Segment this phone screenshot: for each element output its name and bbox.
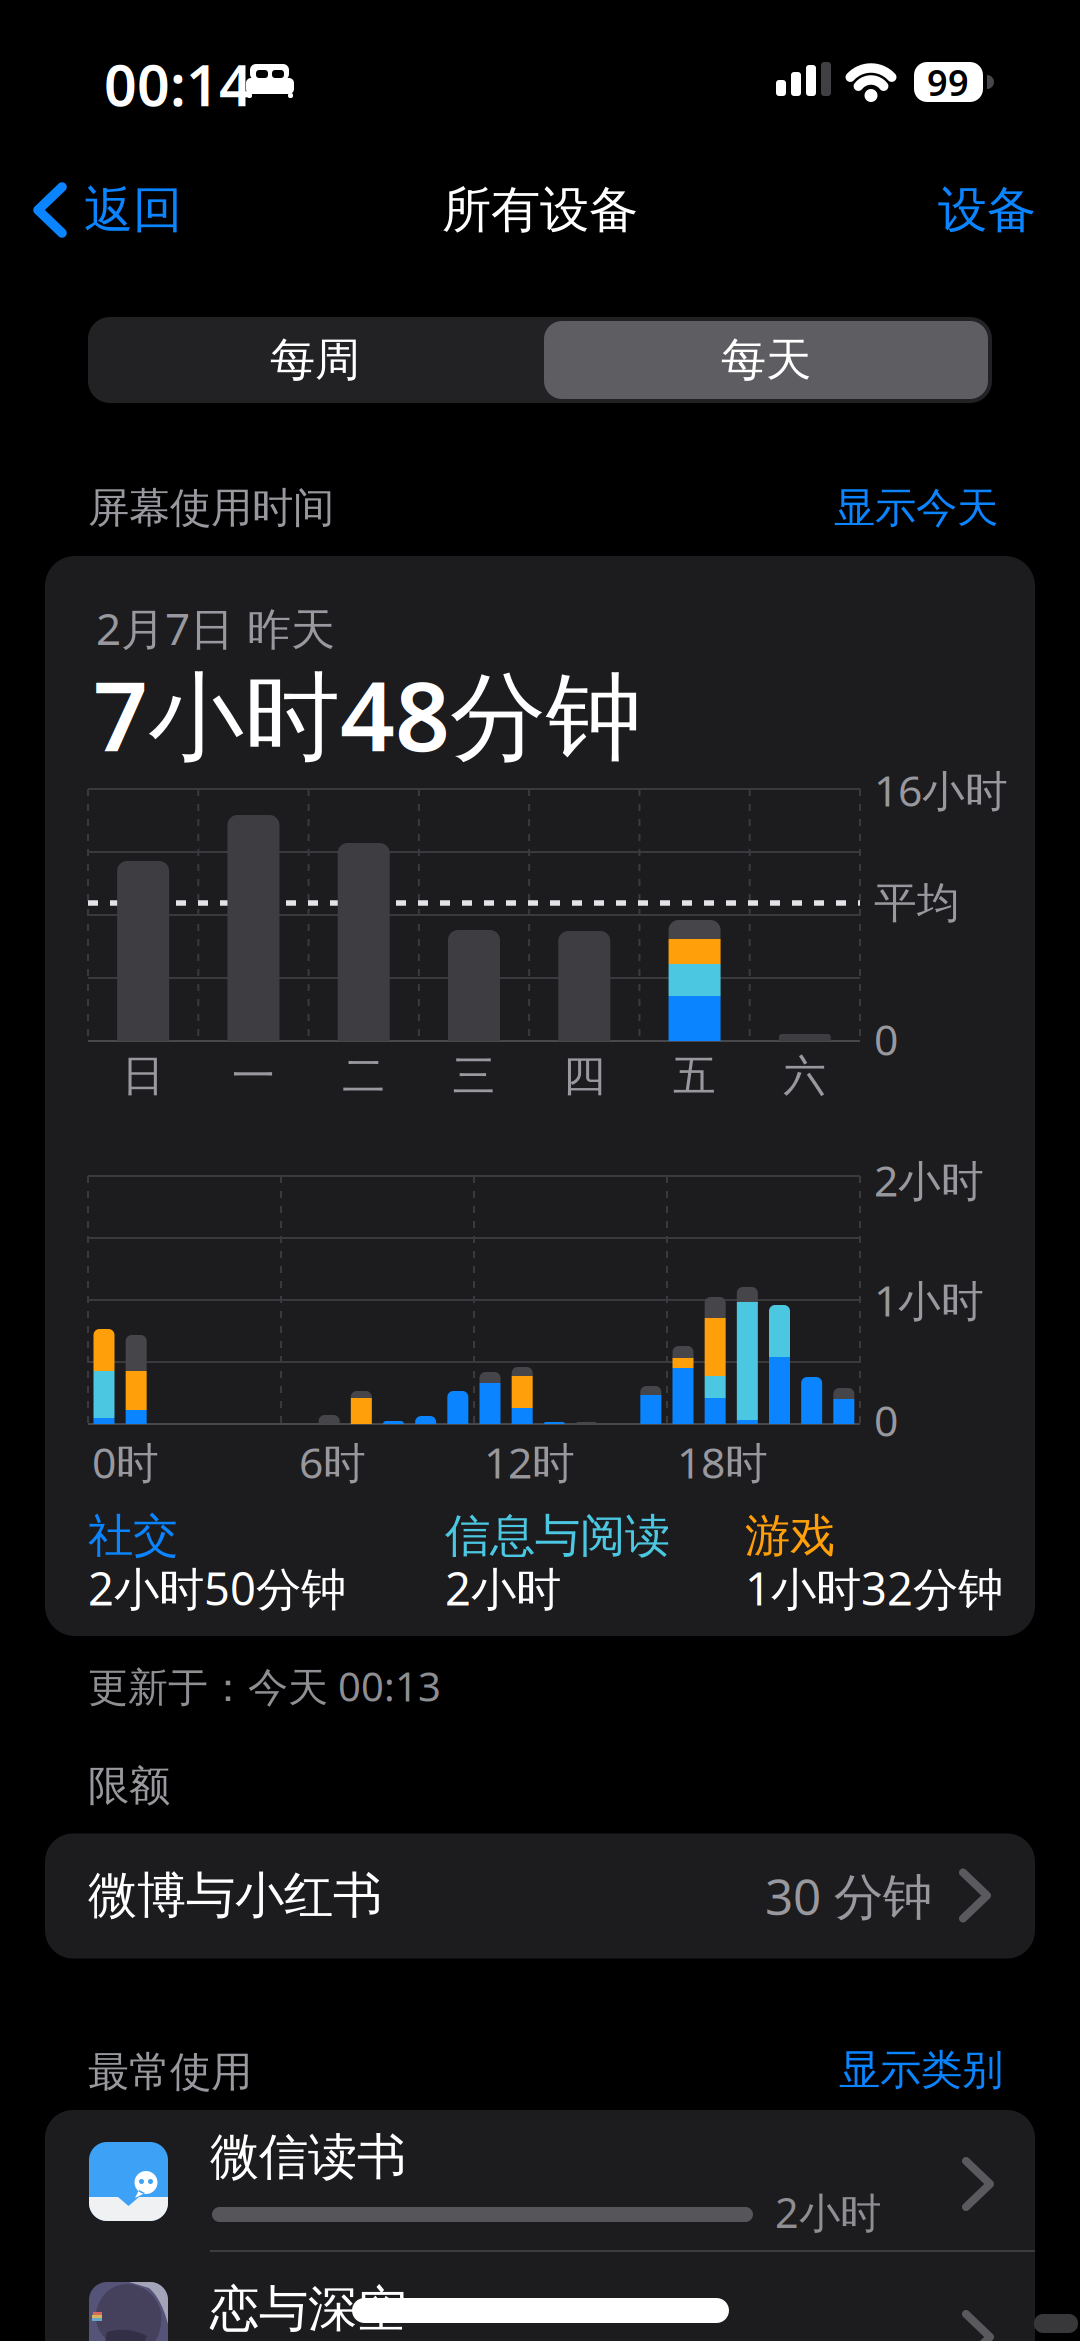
button[interactable]: 恋与深空 (45, 2252, 1035, 2341)
staticText: 1小时 (874, 1272, 984, 1328)
button[interactable]: 返回 (32, 178, 272, 242)
button[interactable]: 显示今天 (811, 480, 1021, 536)
staticText: 2小时 (874, 1152, 984, 1208)
button[interactable]: 每周 (91, 317, 539, 403)
staticText: 游戏 (745, 1508, 835, 1564)
staticText: 2小时 (445, 1558, 561, 1618)
staticText: 五 (673, 1050, 716, 1102)
staticText: 2月7日 昨天 (96, 599, 335, 657)
button[interactable]: 微信读书 (45, 2112, 1035, 2252)
staticText: 每天 (721, 332, 811, 388)
staticText: 恋与深空 (210, 2279, 406, 2339)
staticText: 平均 (874, 877, 960, 929)
staticText: 每周 (270, 332, 360, 388)
staticText: 16小时 (874, 762, 1008, 818)
staticText: 三 (452, 1050, 495, 1102)
staticText: 四 (563, 1050, 606, 1102)
staticText: 显示今天 (834, 483, 998, 533)
staticText: 0 (874, 1011, 898, 1067)
staticText: 日 (122, 1050, 165, 1102)
staticText: 所有设备 (442, 180, 638, 240)
staticText: 00:14 (104, 46, 252, 122)
staticText: 信息与阅读 (445, 1508, 670, 1564)
staticText: 12时 (484, 1434, 575, 1490)
staticText: 最常使用 (88, 2047, 252, 2097)
button[interactable]: 设备 (917, 178, 1057, 242)
staticText: 1小时32分钟 (745, 1558, 1003, 1618)
staticText: 微博与小红书 (88, 1865, 382, 1926)
staticText: 一 (232, 1050, 275, 1102)
staticText: 99 (927, 58, 969, 106)
staticText: 2小时50分钟 (88, 1558, 346, 1618)
staticText: 六 (783, 1050, 826, 1102)
staticText: 微信读书 (210, 2127, 406, 2187)
staticText: 18时 (677, 1434, 768, 1490)
button[interactable]: 微博与小红书 (45, 1833, 1035, 1958)
staticText: 显示类别 (839, 2045, 1003, 2095)
button[interactable]: 每天 (544, 321, 988, 399)
staticText: 7小时48分钟 (93, 650, 642, 778)
staticText: 30 分钟 (765, 1863, 932, 1928)
staticText: 0时 (92, 1434, 159, 1490)
staticText: 设备 (938, 180, 1036, 240)
staticText: 返回 (84, 180, 182, 240)
staticText: 屏幕使用时间 (88, 483, 334, 533)
staticText: 更新于：今天 00:13 (88, 1659, 441, 1712)
staticText: 社交 (88, 1508, 178, 1564)
staticText: 2小时 (775, 2185, 881, 2239)
staticText: 0 (874, 1392, 898, 1448)
staticText: 二 (342, 1050, 385, 1102)
button[interactable]: 显示类别 (816, 2042, 1026, 2098)
staticText: 限额 (88, 1761, 170, 1811)
staticText: 6时 (299, 1434, 366, 1490)
